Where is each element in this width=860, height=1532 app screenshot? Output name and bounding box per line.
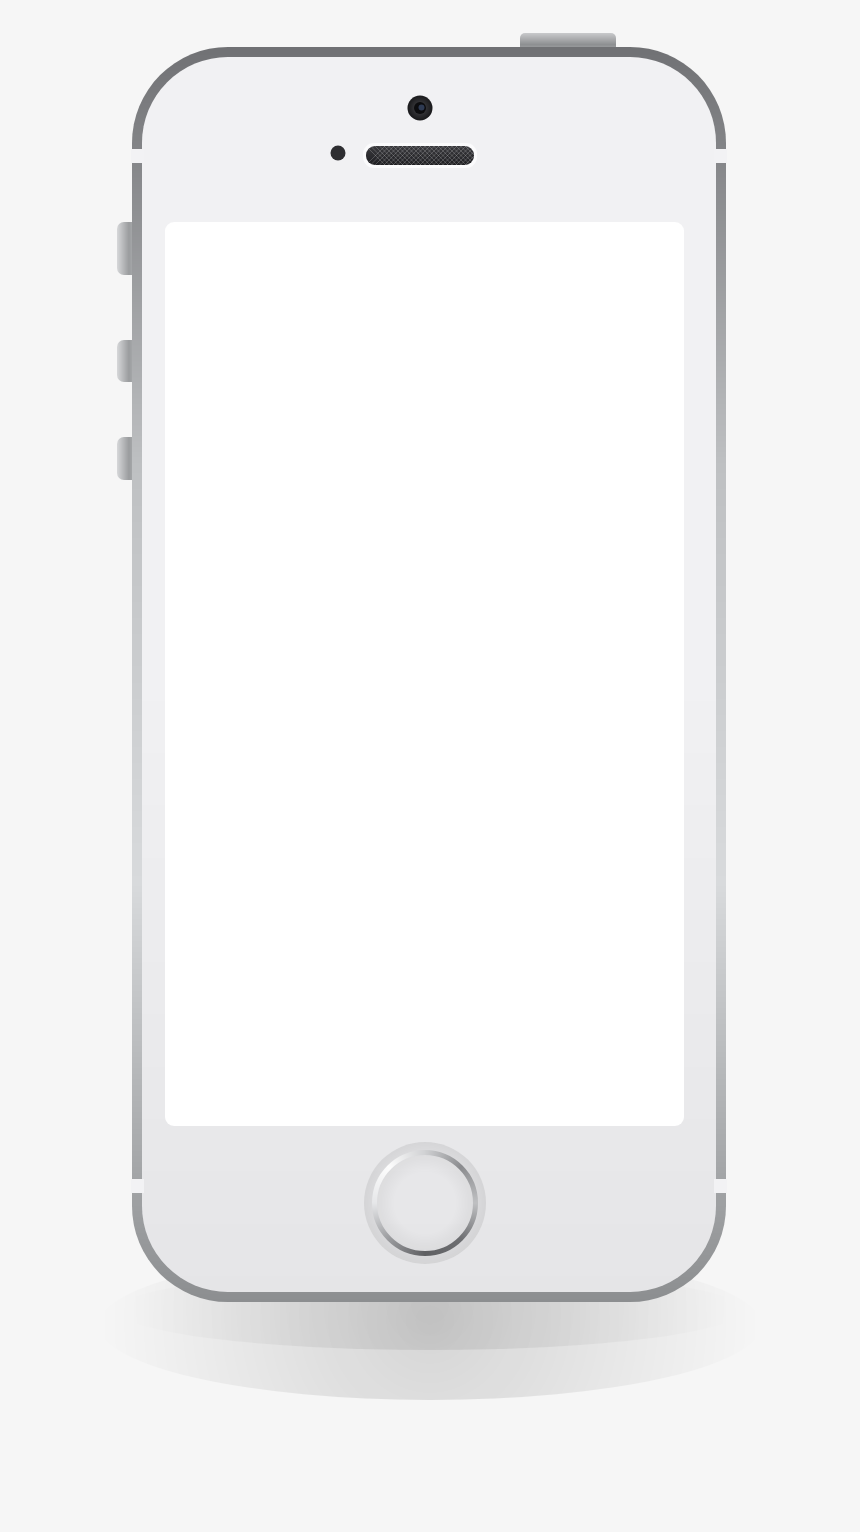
button[interactable]: iPhone device mockup with blank screen	[0, 0, 860, 1532]
